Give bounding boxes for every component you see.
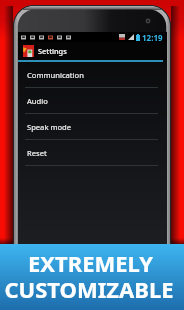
staticText: Communication [27, 70, 84, 80]
staticText: Audio [27, 96, 48, 106]
staticText: 12:19 [142, 32, 163, 42]
staticText: Reset [27, 148, 47, 158]
button[interactable]: Settings [18, 42, 167, 60]
button[interactable]: Communication [18, 62, 167, 87]
button[interactable]: Audio [18, 88, 167, 113]
staticText: CUSTOMIZABLE [4, 274, 174, 304]
button[interactable]: Speak mode [18, 114, 167, 139]
staticText: EXTREMELY [28, 248, 153, 278]
button[interactable]: Reset [18, 140, 167, 165]
staticText: Speak mode [27, 122, 72, 132]
staticText: Settings [38, 46, 67, 56]
